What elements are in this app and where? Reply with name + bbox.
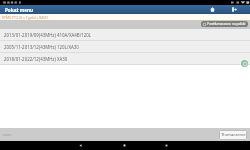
button[interactable]: Log out — [223, 5, 245, 14]
staticText: 2013/01-2019/09(43MHz) 410A/XA4B/120L — [4, 32, 92, 38]
staticText: Tłumaczenie — [221, 132, 246, 138]
button[interactable]: YFM5 FT2.0i » Typ(s) » 84V0 — [2, 15, 48, 20]
button[interactable]: Back — [66, 141, 94, 150]
button[interactable]: Add — [241, 60, 248, 67]
button[interactable]: Pokaż menu — [0, 5, 250, 14]
button[interactable]: Tłumaczenie — [219, 130, 247, 140]
button[interactable]: Przetłumaczono na polski — [201, 21, 248, 27]
button[interactable]: 2018/01-2022/12(43MHz) XA30 — [0, 53, 250, 65]
button[interactable]: Recents — [152, 141, 180, 150]
staticText: Przetłumaczono na polski — [207, 22, 246, 26]
button[interactable]: Home — [110, 141, 138, 150]
staticText: 2005/11-2013/12(43MHz) 120L/XA30 — [4, 44, 79, 50]
staticText: Pokaż menu — [5, 7, 33, 13]
staticText: etwm — [3, 133, 12, 137]
button[interactable]: Home — [201, 5, 223, 14]
staticText: 2018/01-2022/12(43MHz) XA30 — [4, 56, 68, 62]
button[interactable]: 2013/01-2019/09(43MHz) 410A/XA4B/120L — [0, 29, 250, 41]
button[interactable]: 2005/11-2013/12(43MHz) 120L/XA30 — [0, 41, 250, 53]
